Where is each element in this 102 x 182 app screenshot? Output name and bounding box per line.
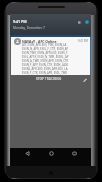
staticText: ES0NL_APR-E00, ES0N_APR-E00, LA [22, 67, 68, 71]
staticText: ES0N_F_APP, ES0N_CTR, ES0N_LA00 [22, 63, 69, 67]
staticText: NAVAsY - AFC Online [22, 39, 57, 44]
button[interactable]: NAVAsY - AFC Online [11, 37, 90, 75]
button[interactable]: Recents [67, 148, 81, 159]
button[interactable]: Back [20, 148, 34, 159]
staticText: STOP TRACKING [36, 77, 62, 81]
staticText: ES0N_A_TWR, ES0N_APR, ES0N_CTR [22, 59, 69, 63]
staticText: ES0N_N_APR, ES0L_F_CTR, ES0N_AP [22, 47, 69, 51]
staticText: 9:41 PM [78, 39, 88, 43]
staticText: ATC ES0N_APR-E00, TWE_ES0N_LA [22, 43, 67, 47]
button[interactable]: STOP TRACKING [34, 76, 64, 82]
staticText: ES0L_AP18, ES0S_N_TWR, ES0KL_AP [22, 55, 69, 59]
button[interactable]: Home [44, 148, 58, 159]
button[interactable]: Edit [82, 77, 88, 83]
staticText: ES0N_SNR, ES0N_APR-E00, ES0N_A [22, 75, 68, 79]
staticText: Monday, December 7 [13, 26, 45, 30]
staticText: ES0B_F_CTR, ES0N_APR, ES0L_TWR [22, 71, 68, 75]
staticText: ES0N_TWR, ES0N_APR-E00, ES0N_F [22, 51, 68, 55]
staticText: 9:41 PM [13, 19, 27, 24]
